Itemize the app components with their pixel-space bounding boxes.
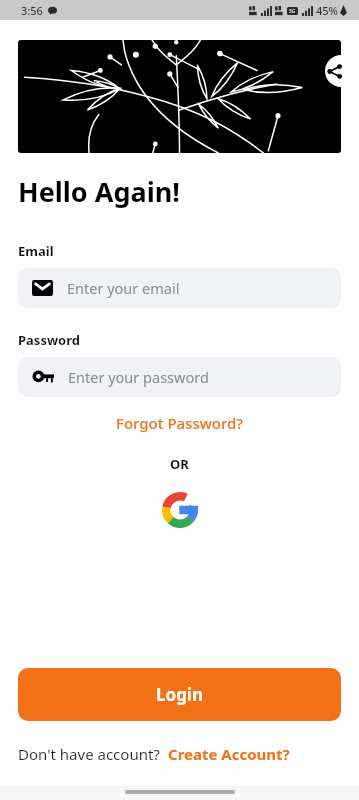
button[interactable]: Share [325, 55, 357, 87]
staticText: Enter your email [67, 278, 180, 298]
button[interactable]: Enter your password [18, 357, 341, 397]
staticText: Create Account? [168, 744, 290, 764]
staticText: Email [18, 242, 54, 260]
button[interactable]: Create Account? [168, 744, 290, 764]
button[interactable]: Forgot Password? [0, 413, 359, 433]
staticText: Don't have account? [18, 744, 160, 764]
staticText: OR [170, 455, 189, 473]
staticText: 3:56 [21, 3, 43, 18]
staticText: Login [156, 683, 204, 706]
staticText: Password [18, 331, 80, 349]
button[interactable]: Enter your email [18, 268, 341, 308]
staticText: Hello Again! [18, 173, 180, 210]
button[interactable]: Sign in with Google [159, 489, 201, 531]
staticText: 5G [289, 8, 296, 15]
staticText: 45% [316, 3, 338, 18]
staticText: Forgot Password? [116, 413, 244, 433]
button[interactable]: Login [18, 668, 341, 721]
staticText: Enter your password [68, 367, 209, 387]
